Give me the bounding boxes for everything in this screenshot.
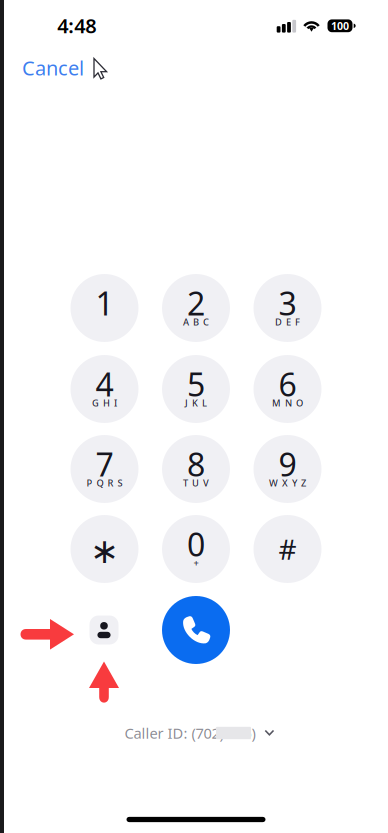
- button[interactable]: 9: [253, 435, 321, 503]
- button[interactable]: 7: [70, 435, 138, 503]
- staticText: 9: [278, 443, 296, 485]
- staticText: 7: [95, 443, 113, 485]
- staticText: 4:48: [57, 12, 96, 39]
- button[interactable]: 2: [162, 274, 230, 342]
- staticText: A B C: [183, 316, 209, 328]
- button[interactable]: #: [253, 515, 321, 583]
- staticText: +: [193, 557, 198, 569]
- staticText: Caller ID: (702) 745): [124, 723, 255, 743]
- button[interactable]: 4: [70, 355, 138, 423]
- staticText: 8: [187, 443, 205, 485]
- staticText: Cancel: [22, 54, 84, 81]
- button[interactable]: Contacts: [89, 615, 118, 644]
- staticText: 100: [331, 19, 349, 33]
- staticText: D E F: [275, 316, 300, 328]
- staticText: #: [278, 530, 296, 568]
- staticText: P Q R S: [86, 477, 122, 489]
- button[interactable]: Cancel: [0, 48, 94, 88]
- staticText: 5: [187, 363, 205, 405]
- staticText: ∗: [90, 531, 119, 571]
- staticText: 0: [187, 523, 205, 565]
- button[interactable]: Call: [162, 596, 230, 664]
- button[interactable]: 1: [70, 274, 138, 342]
- staticText: 4: [95, 363, 113, 405]
- button[interactable]: ∗: [70, 515, 138, 583]
- staticText: W X Y Z: [269, 477, 306, 489]
- button[interactable]: 6: [253, 355, 321, 423]
- staticText: J K L: [185, 397, 207, 409]
- button[interactable]: 3: [253, 274, 321, 342]
- button[interactable]: 8: [162, 435, 230, 503]
- staticText: M N O: [272, 397, 303, 409]
- button[interactable]: 0: [162, 515, 230, 583]
- staticText: 2: [187, 282, 205, 324]
- button[interactable]: Caller ID: (702) 745): [124, 719, 274, 747]
- button[interactable]: 5: [162, 355, 230, 423]
- staticText: 3: [278, 282, 296, 324]
- staticText: T U V: [183, 477, 209, 489]
- staticText: G H I: [92, 397, 117, 409]
- staticText: 1: [95, 282, 113, 324]
- staticText: 6: [278, 363, 296, 405]
